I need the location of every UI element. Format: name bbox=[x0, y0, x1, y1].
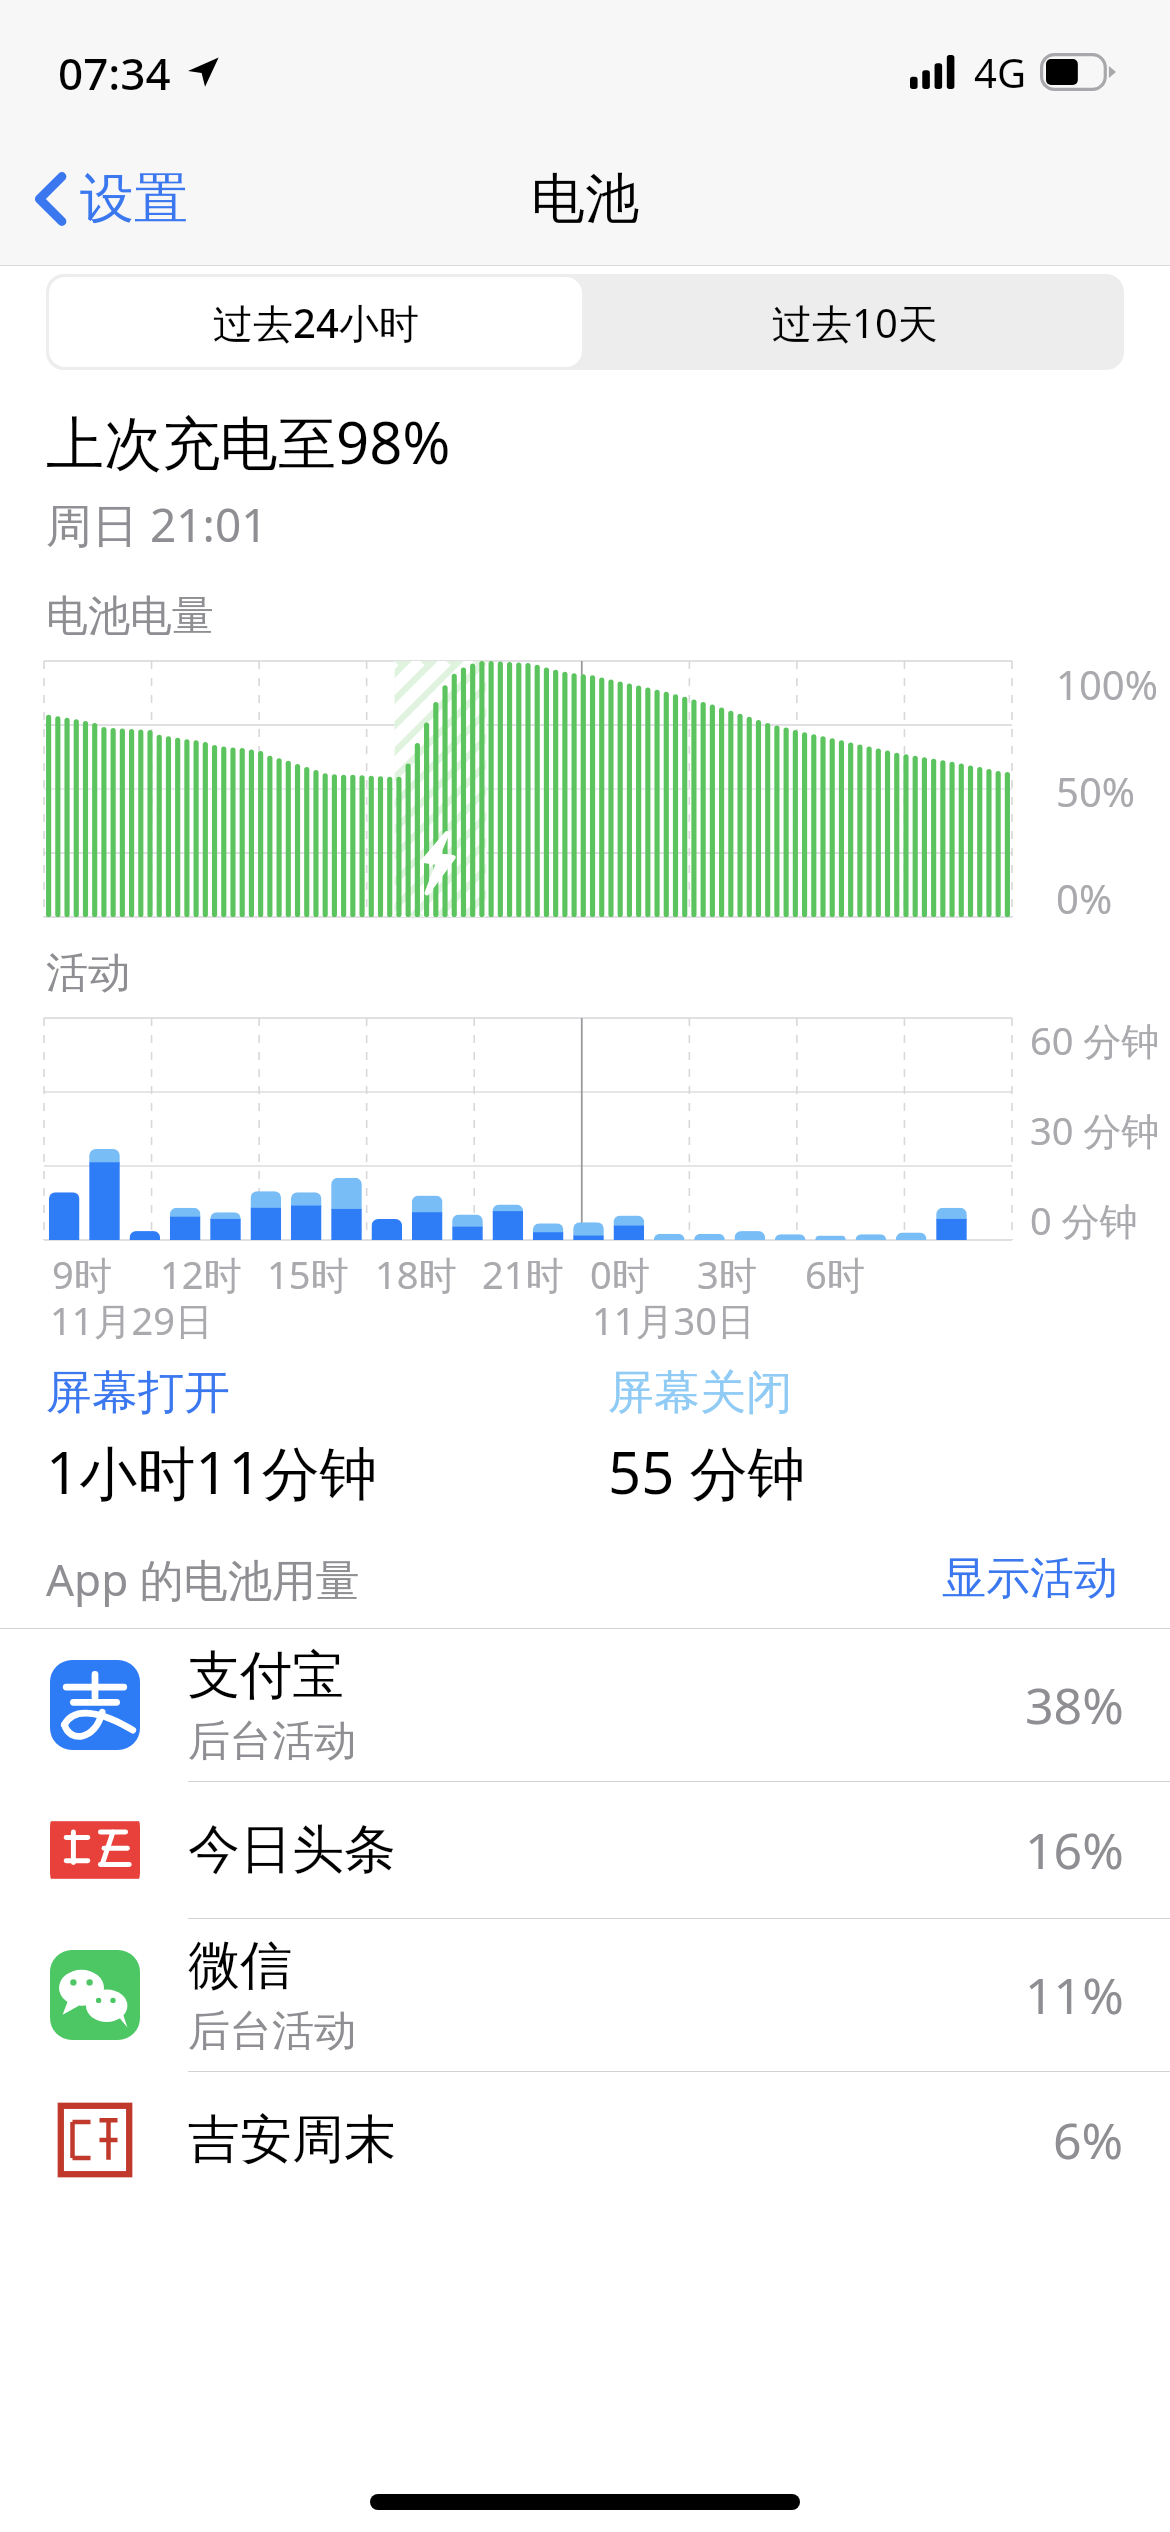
staticText: 后台活动 bbox=[188, 2005, 356, 2058]
staticText: 活动 bbox=[46, 947, 130, 1000]
staticText: 电池 bbox=[531, 165, 639, 233]
staticText: 11月30日 bbox=[592, 1294, 755, 1346]
staticText: 12时 bbox=[160, 1248, 242, 1296]
staticText: 微信 bbox=[188, 1933, 292, 1999]
button[interactable]: 显示活动 bbox=[936, 1545, 1124, 1612]
staticText: 38% bbox=[1025, 1671, 1124, 1739]
staticText: 07:34 bbox=[58, 43, 171, 103]
staticText: 过去10天 bbox=[772, 295, 938, 350]
staticText: 4G bbox=[974, 45, 1026, 99]
staticText: 后台活动 bbox=[188, 1715, 356, 1768]
staticText: 11% bbox=[1025, 1961, 1124, 2029]
staticText: 周日 21:01 bbox=[46, 493, 268, 556]
staticText: 60 分钟 bbox=[1030, 1014, 1160, 1066]
staticText: 屏幕关闭 bbox=[608, 1364, 792, 1422]
button[interactable]: 吉安周末 bbox=[0, 2072, 1170, 2208]
staticText: 支付宝 bbox=[188, 1643, 344, 1709]
staticText: 1小时11分钟 bbox=[46, 1432, 378, 1511]
button[interactable]: 微信 bbox=[0, 1919, 1170, 2071]
staticText: 6% bbox=[1053, 2106, 1124, 2174]
staticText: 吉安周末 bbox=[188, 2107, 396, 2173]
staticText: 0 分钟 bbox=[1030, 1194, 1138, 1246]
staticText: 0% bbox=[1056, 871, 1113, 925]
staticText: App 的电池用量 bbox=[46, 1549, 360, 1609]
staticText: 电池电量 bbox=[46, 590, 214, 643]
staticText: 上次充电至98% bbox=[46, 402, 451, 481]
button[interactable]: 过去24小时 bbox=[49, 277, 582, 367]
staticText: 30 分钟 bbox=[1030, 1104, 1160, 1156]
staticText: 11月29日 bbox=[50, 1294, 213, 1346]
staticText: 过去24小时 bbox=[213, 295, 419, 350]
staticText: 50% bbox=[1056, 764, 1135, 818]
staticText: 55 分钟 bbox=[608, 1432, 806, 1511]
staticText: 设置 bbox=[80, 165, 188, 233]
staticText: 0时 bbox=[590, 1248, 650, 1296]
staticText: 显示活动 bbox=[942, 1551, 1118, 1606]
staticText: 18时 bbox=[375, 1248, 457, 1296]
staticText: 9时 bbox=[52, 1248, 112, 1296]
button[interactable]: 过去10天 bbox=[585, 274, 1124, 370]
staticText: 100% bbox=[1056, 657, 1158, 711]
staticText: 15时 bbox=[267, 1248, 349, 1296]
button[interactable]: 今日头条 bbox=[0, 1782, 1170, 1918]
staticText: 今日头条 bbox=[188, 1817, 396, 1883]
button[interactable]: 设置 bbox=[26, 157, 196, 241]
button[interactable]: 支付宝 bbox=[0, 1629, 1170, 1781]
staticText: 3时 bbox=[697, 1248, 757, 1296]
staticText: 6时 bbox=[805, 1248, 865, 1296]
staticText: 16% bbox=[1025, 1816, 1124, 1884]
staticText: 屏幕打开 bbox=[46, 1364, 230, 1422]
staticText: 21时 bbox=[482, 1248, 564, 1296]
